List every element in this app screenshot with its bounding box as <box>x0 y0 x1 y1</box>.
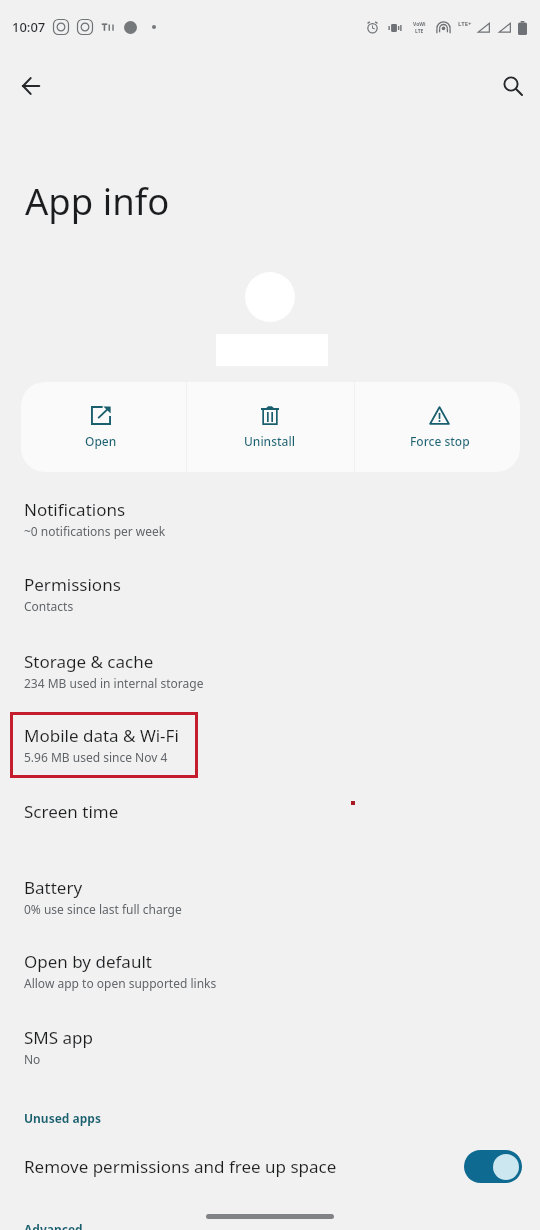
staticText: 5.96 MB used since Nov 4 <box>24 749 168 765</box>
button[interactable]: Mobile data & Wi-Fi <box>0 718 540 774</box>
staticText: Unused apps <box>24 1110 101 1126</box>
button[interactable]: Open by default <box>0 944 540 1000</box>
button[interactable]: Notifications <box>0 492 540 548</box>
staticText: Screen time <box>24 800 119 823</box>
staticText: Allow app to open supported links <box>24 975 217 991</box>
staticText: 0% use since last full charge <box>24 901 182 917</box>
button[interactable]: Open <box>21 382 183 472</box>
staticText: Remove permissions and free up space <box>24 1155 464 1178</box>
staticText: LTE <box>415 28 424 35</box>
button[interactable]: Force stop <box>357 382 520 472</box>
staticText: Force stop <box>410 433 470 449</box>
button[interactable]: Remove permissions and free up space <box>0 1145 540 1187</box>
staticText: SMS app <box>24 1026 93 1049</box>
button[interactable]: Storage & cache <box>0 644 540 700</box>
staticText: Open <box>85 433 117 449</box>
staticText: Battery <box>24 876 83 899</box>
button[interactable]: Back <box>11 66 51 106</box>
staticText: Contacts <box>24 598 74 614</box>
button[interactable]: Battery <box>0 870 540 926</box>
button[interactable]: Toggle remove permissions <box>464 1150 522 1183</box>
staticText: 234 MB used in internal storage <box>24 675 204 691</box>
button[interactable]: Uninstall <box>186 382 353 472</box>
staticText: Permissions <box>24 573 121 596</box>
button[interactable]: Screen time <box>0 794 540 834</box>
staticText: Notifications <box>24 498 126 521</box>
staticText: LTE+ <box>458 20 472 28</box>
button[interactable]: SMS app <box>0 1020 540 1076</box>
staticText: Advanced <box>24 1221 83 1230</box>
staticText: Open by default <box>24 950 152 973</box>
staticText: Mobile data & Wi-Fi <box>24 724 179 747</box>
staticText: ~0 notifications per week <box>24 523 166 539</box>
button[interactable]: Permissions <box>0 567 540 623</box>
staticText: Uninstall <box>244 433 295 449</box>
button[interactable]: Search <box>493 66 533 106</box>
staticText: App info <box>25 176 170 226</box>
staticText: Storage & cache <box>24 650 154 673</box>
staticText: VoWi <box>413 21 426 28</box>
staticText: No <box>24 1051 41 1067</box>
staticText: 10:07 <box>12 18 46 36</box>
